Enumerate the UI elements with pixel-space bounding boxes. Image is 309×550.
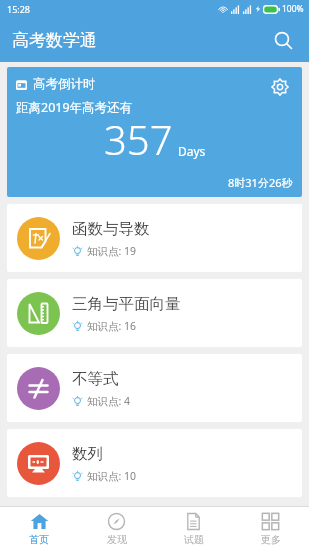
staticText: 更多 xyxy=(261,533,281,546)
staticText: 知识点: 4 xyxy=(87,394,131,408)
button[interactable]: 函数与导数 xyxy=(7,204,302,272)
staticText: 试题 xyxy=(184,533,204,546)
staticText: 首页 xyxy=(29,533,49,546)
button[interactable]: 数列 xyxy=(7,429,302,497)
staticText: 发现 xyxy=(107,533,127,546)
button[interactable]: Settings xyxy=(264,71,296,103)
staticText: 函数与导数 xyxy=(72,219,150,239)
button[interactable]: 试题 xyxy=(155,507,232,550)
staticText: 100% xyxy=(282,3,304,15)
button[interactable]: 发现 xyxy=(78,507,155,550)
staticText: 357 xyxy=(104,112,173,166)
button[interactable]: Search xyxy=(263,20,303,60)
button[interactable]: 三角与平面向量 xyxy=(7,279,302,347)
staticText: 高考数学通 xyxy=(12,30,97,51)
staticText: 15:28 xyxy=(7,3,31,15)
staticText: 知识点: 10 xyxy=(87,469,137,483)
staticText: Days xyxy=(178,143,206,159)
staticText: 三角与平面向量 xyxy=(72,294,181,314)
button[interactable]: 高考倒计时 xyxy=(7,67,302,197)
staticText: 不等式 xyxy=(72,369,119,389)
staticText: 数列 xyxy=(72,444,103,464)
staticText: 距离2019年高考还有 xyxy=(16,99,133,116)
staticText: 高考倒计时 xyxy=(33,76,96,92)
staticText: 8时31分26秒 xyxy=(228,175,293,190)
staticText: 知识点: 16 xyxy=(87,319,137,333)
staticText: 知识点: 19 xyxy=(87,244,137,258)
button[interactable]: 更多 xyxy=(232,507,309,550)
button[interactable]: 不等式 xyxy=(7,354,302,422)
button[interactable]: 首页 xyxy=(0,507,78,550)
